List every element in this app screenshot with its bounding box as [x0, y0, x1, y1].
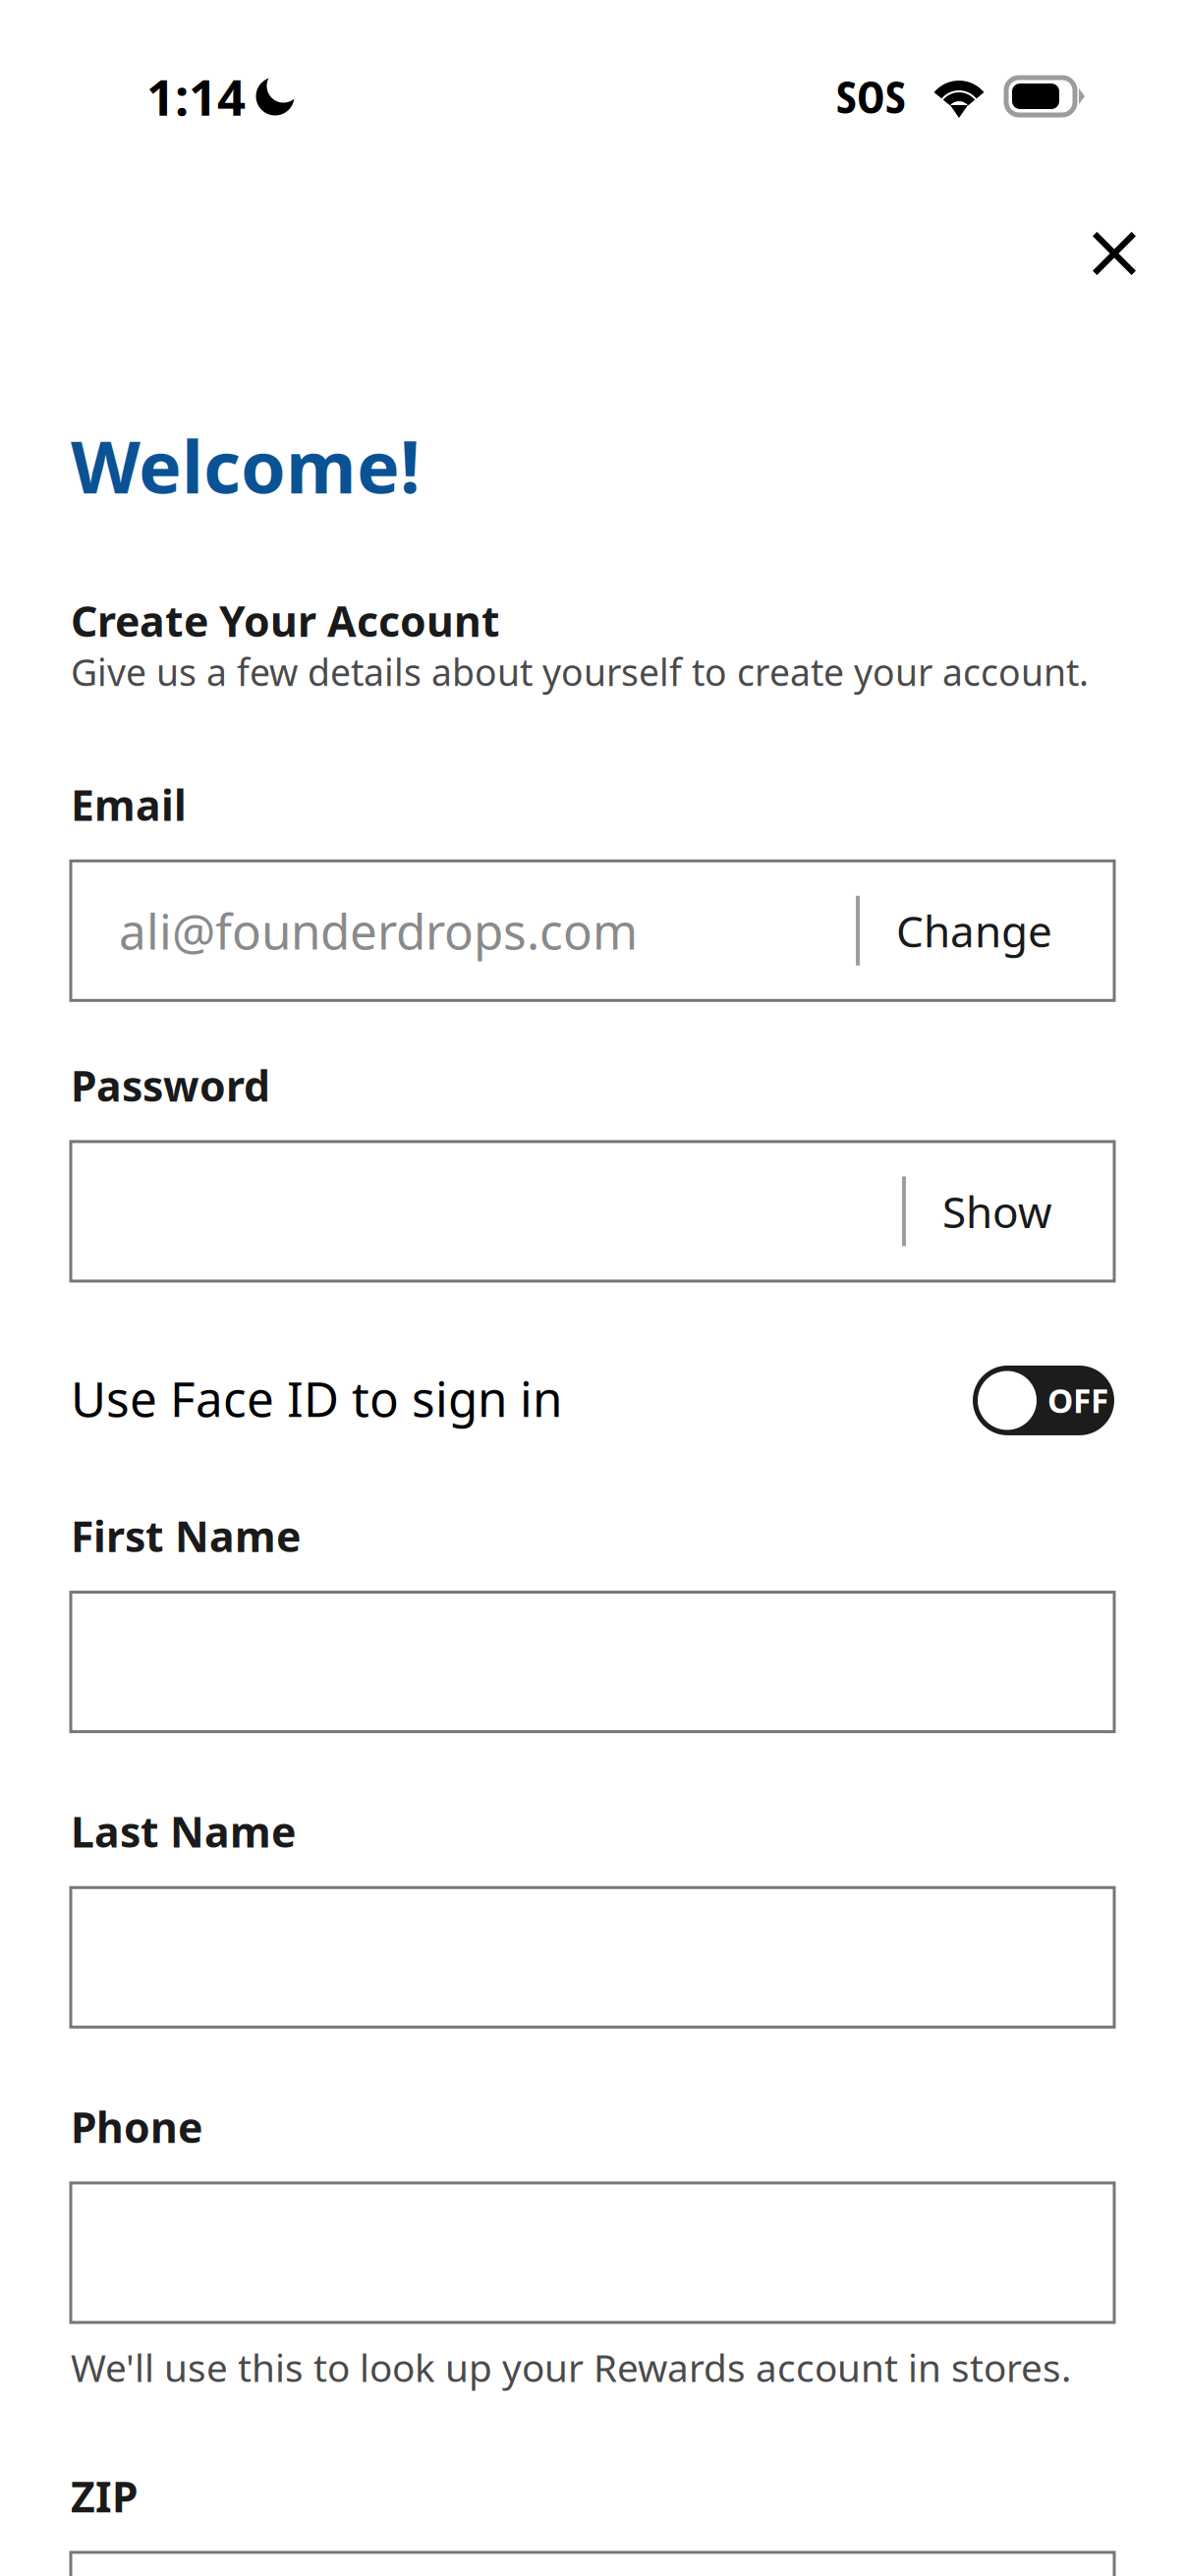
staticText: First Name — [71, 1508, 301, 1564]
staticText: Use Face ID to sign in — [71, 1366, 562, 1430]
staticText: ZIP — [71, 2468, 138, 2524]
button[interactable]: Close — [1049, 212, 1185, 301]
staticText: Create Your Account — [71, 593, 500, 649]
staticText: OFF — [1047, 1379, 1108, 1422]
staticText: Show — [942, 1183, 1052, 1240]
staticText: Last Name — [71, 1803, 296, 1859]
staticText: Email — [71, 777, 187, 832]
staticText: 1:14 — [146, 63, 246, 129]
staticText: SOS — [836, 66, 906, 127]
staticText: Phone — [71, 2099, 202, 2155]
staticText: Change — [896, 902, 1052, 959]
button[interactable]: Use Face ID to sign in, off — [973, 1366, 1114, 1435]
staticText: Give us a few details about yourself to … — [71, 647, 1089, 696]
staticText: We'll use this to look up your Rewards a… — [71, 2342, 1071, 2392]
staticText: Welcome! — [71, 418, 421, 513]
staticText: ali@founderdrops.com — [119, 898, 638, 963]
staticText: Password — [71, 1057, 270, 1113]
